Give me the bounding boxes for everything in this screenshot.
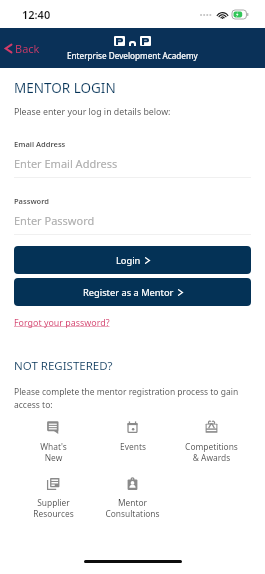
staticText: What's New: [40, 441, 67, 463]
staticText: Events: [120, 441, 146, 452]
button[interactable]: Enter Email Address: [14, 156, 251, 171]
staticText: NOT REGISTERED?: [14, 358, 113, 374]
button[interactable]: Login: [14, 246, 251, 274]
staticText: Mentor Consultations: [105, 497, 160, 519]
staticText: Back: [15, 41, 40, 56]
staticText: Login: [116, 254, 141, 267]
staticText: Enterprise Development Academy: [67, 50, 198, 61]
staticText: MENTOR LOGIN: [14, 79, 116, 97]
staticText: Password: [14, 196, 50, 206]
button[interactable]: Forgot your password?: [14, 316, 110, 328]
button[interactable]: Competitions and Awards: [172, 421, 251, 463]
button[interactable]: Back: [5, 41, 40, 56]
staticText: Please complete the mentor registration …: [14, 386, 251, 410]
button[interactable]: Enter Password: [14, 213, 251, 228]
button[interactable]: Events: [93, 421, 172, 452]
staticText: Supplier Resources: [33, 497, 74, 519]
button[interactable]: Mentor Consultations: [93, 477, 172, 519]
staticText: Enter Password: [14, 213, 95, 228]
staticText: Email Address: [14, 139, 66, 149]
staticText: 12:40: [22, 7, 51, 22]
button[interactable]: Register as a Mentor: [14, 278, 251, 306]
button[interactable]: What's New: [14, 421, 93, 463]
staticText: Enter Email Address: [14, 156, 118, 171]
button[interactable]: Supplier Resources: [14, 477, 93, 519]
staticText: Register as a Mentor: [83, 286, 174, 299]
staticText: Competitions & Awards: [185, 441, 238, 463]
staticText: Please enter your log in details below:: [14, 106, 171, 118]
